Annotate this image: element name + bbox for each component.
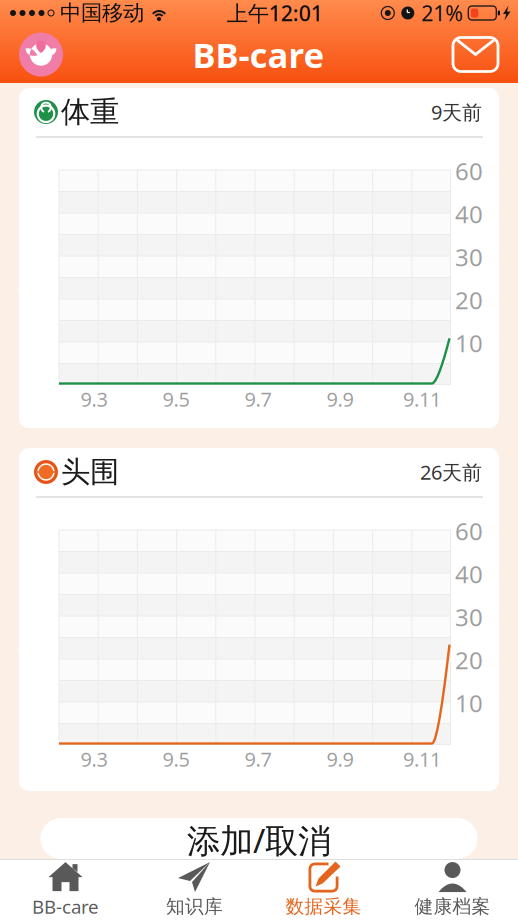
staticText: 健康档案 bbox=[414, 895, 490, 918]
staticText: 上午12:01 bbox=[227, 0, 323, 27]
staticText: 数据采集 bbox=[285, 895, 361, 918]
staticText: 9.7 bbox=[244, 746, 271, 772]
staticText: 40 bbox=[455, 198, 483, 230]
staticText: 30 bbox=[455, 241, 483, 273]
staticText: BB-care bbox=[32, 894, 99, 919]
staticText: 9.5 bbox=[162, 386, 189, 412]
button[interactable]: 健康档案 bbox=[388, 859, 517, 920]
button[interactable]: 数据采集 bbox=[259, 859, 388, 920]
button[interactable]: Profile bbox=[18, 31, 64, 77]
button[interactable]: Messages bbox=[453, 37, 498, 71]
staticText: 30 bbox=[455, 601, 483, 633]
staticText: 20 bbox=[455, 644, 483, 676]
staticText: 体重 bbox=[61, 94, 119, 130]
staticText: 9.11 bbox=[403, 746, 441, 772]
staticText: 40 bbox=[455, 558, 483, 590]
staticText: 9.9 bbox=[326, 746, 353, 772]
staticText: 知识库 bbox=[166, 895, 223, 918]
staticText: 添加/取消 bbox=[187, 818, 331, 862]
staticText: 头围 bbox=[61, 454, 119, 490]
staticText: 20 bbox=[455, 284, 483, 316]
staticText: 9.11 bbox=[403, 386, 441, 412]
staticText: 60 bbox=[455, 155, 483, 187]
staticText: 9.3 bbox=[80, 746, 107, 772]
staticText: 中国移动 bbox=[60, 0, 144, 26]
staticText: 26天前 bbox=[420, 459, 482, 485]
staticText: 10 bbox=[455, 687, 483, 719]
staticText: 60 bbox=[455, 515, 483, 547]
staticText: 9.7 bbox=[244, 386, 271, 412]
staticText: 21% bbox=[421, 0, 463, 27]
staticText: 9.9 bbox=[326, 386, 353, 412]
button[interactable]: 添加/取消 bbox=[40, 818, 477, 859]
staticText: BB-care bbox=[192, 31, 324, 77]
staticText: 9.3 bbox=[80, 386, 107, 412]
button[interactable]: BB-care bbox=[1, 859, 130, 920]
staticText: 9天前 bbox=[431, 99, 482, 125]
staticText: 10 bbox=[455, 327, 483, 359]
staticText: 9.5 bbox=[162, 746, 189, 772]
button[interactable]: 知识库 bbox=[130, 859, 259, 920]
